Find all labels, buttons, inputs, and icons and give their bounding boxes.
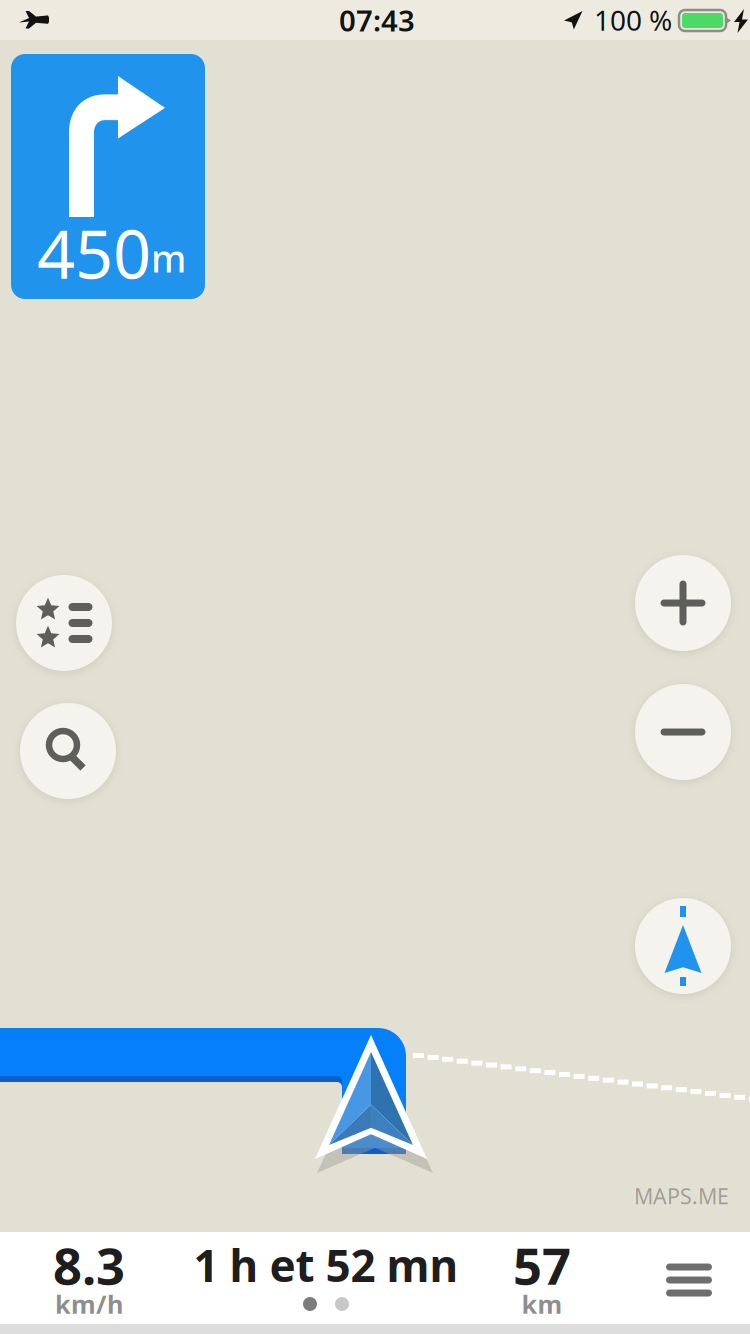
staticText: 07:43: [339, 0, 415, 39]
button[interactable]: 57: [477, 1240, 607, 1331]
button[interactable]: Search: [20, 703, 116, 799]
staticText: MAPS.ME: [634, 1182, 729, 1210]
button[interactable]: Zoom out: [635, 684, 731, 780]
button[interactable]: Recenter map: [635, 898, 731, 994]
button[interactable]: 1 h et 52 mn: [161, 1240, 491, 1331]
staticText: 450: [37, 209, 151, 297]
staticText: 100 %: [594, 1, 672, 39]
staticText: 57: [513, 1231, 571, 1299]
staticText: km/h: [55, 1287, 123, 1321]
staticText: km: [521, 1287, 562, 1321]
staticText: m: [151, 233, 186, 283]
button[interactable]: Bookmarks: [16, 575, 112, 671]
button[interactable]: 8.3: [0, 1240, 179, 1331]
staticText: 8.3: [53, 1231, 125, 1299]
button[interactable]: Zoom in: [635, 555, 731, 651]
staticText: 1 h et 52 mn: [193, 1236, 458, 1294]
button[interactable]: Menu: [628, 1234, 750, 1326]
